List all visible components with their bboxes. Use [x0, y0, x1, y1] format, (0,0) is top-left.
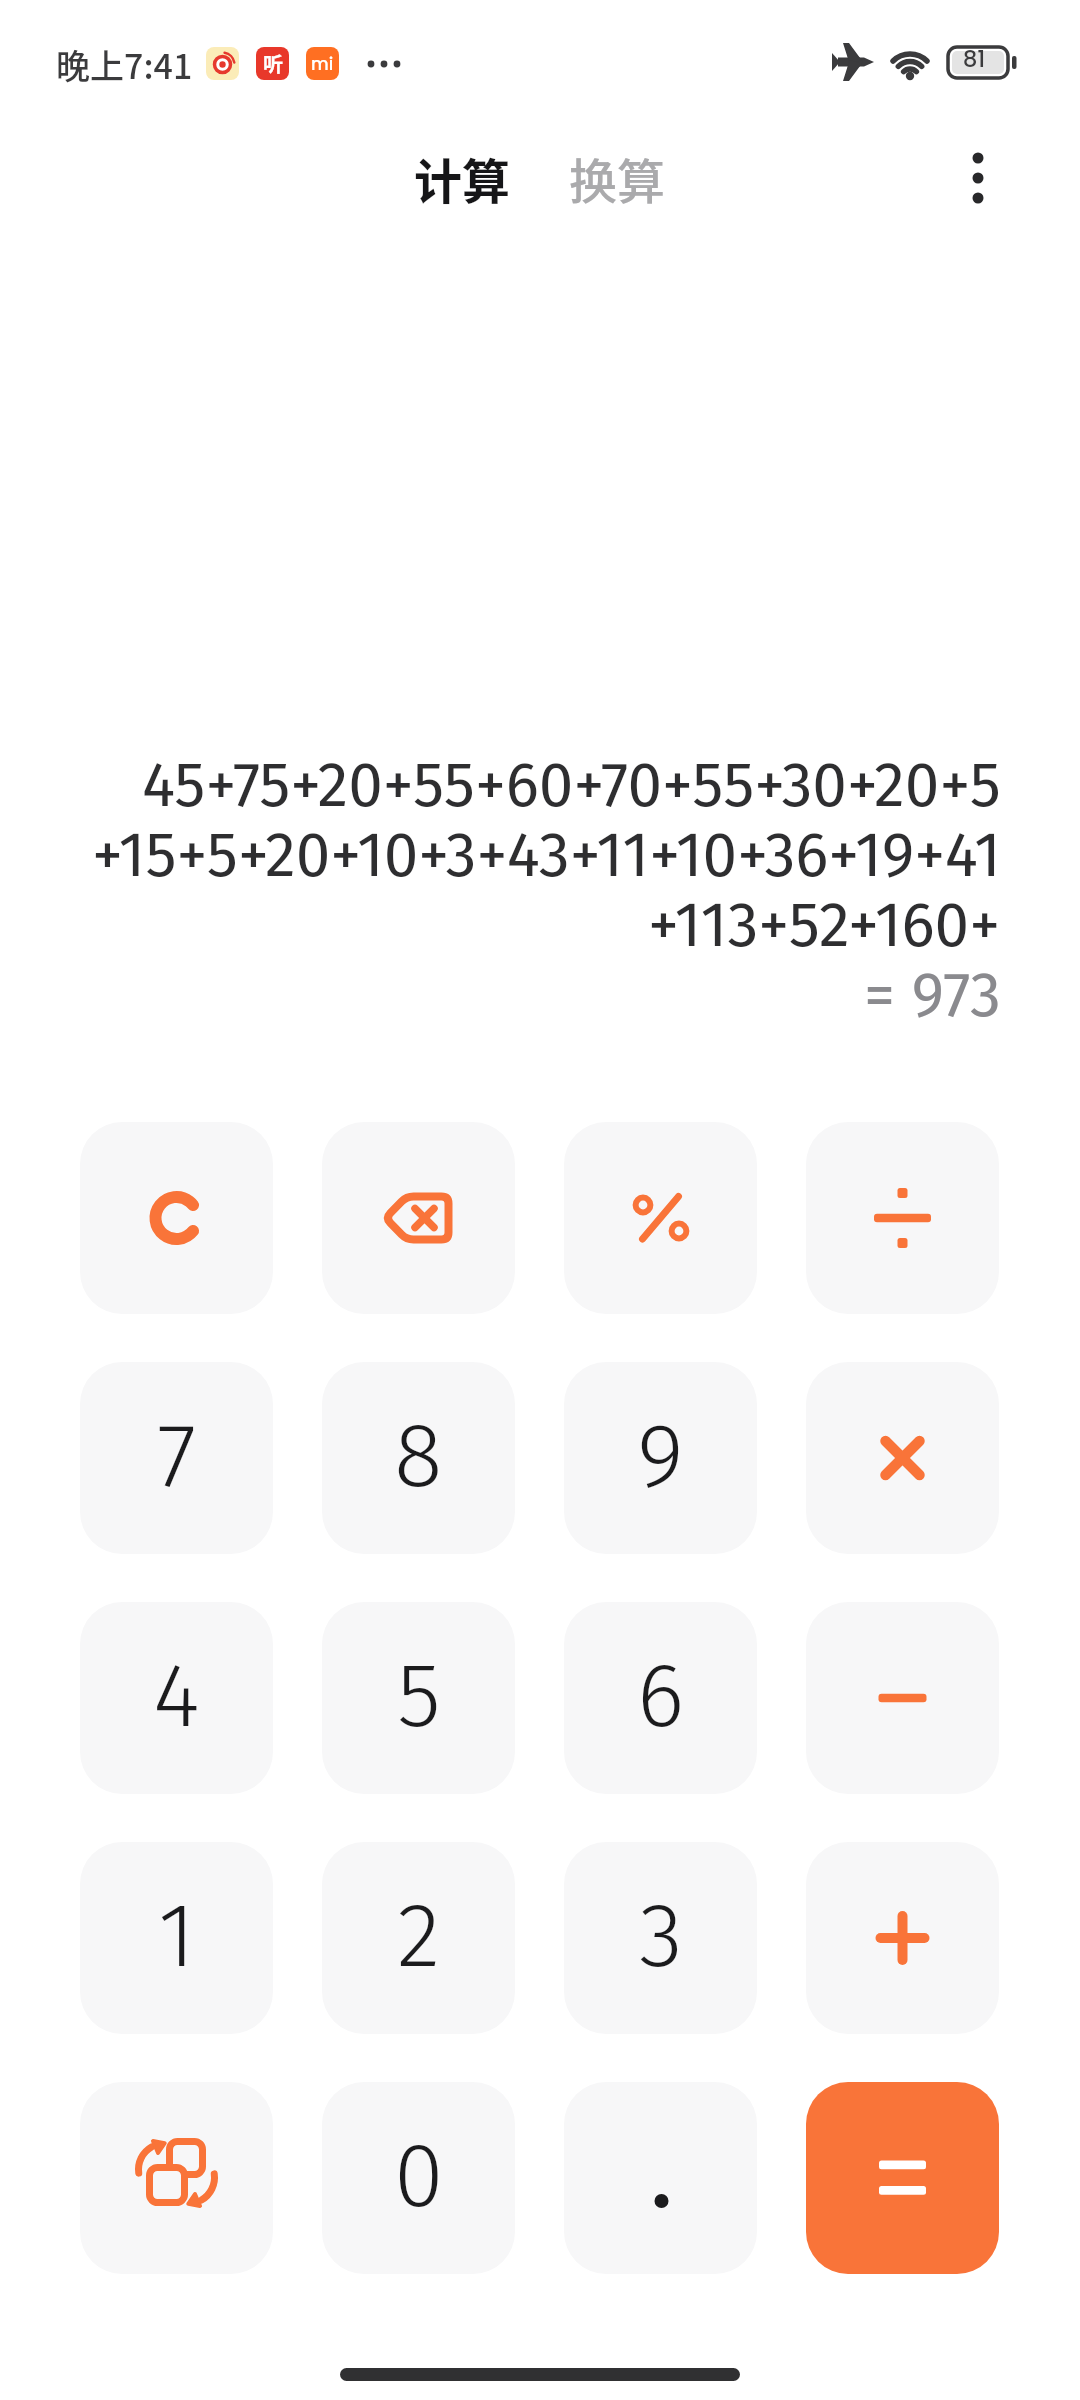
button[interactable] [322, 1122, 515, 1314]
button[interactable]: 换算 [569, 143, 666, 213]
staticText: mi [311, 52, 334, 76]
staticText: 听 [263, 49, 283, 78]
button[interactable]: 计算 [414, 143, 511, 213]
button[interactable]: 7 [80, 1362, 273, 1554]
staticText: 8 [394, 1402, 443, 1510]
staticText: 9 [637, 1402, 684, 1510]
staticText: +113+52+160+ [648, 888, 1001, 962]
button[interactable]: 6 [564, 1602, 757, 1794]
staticText: +15+5+20+10+3+43+11+10+36+19+41 [92, 818, 1001, 892]
staticText: 7 [157, 1402, 197, 1510]
button[interactable] [806, 1362, 999, 1554]
staticText: 4 [153, 1642, 200, 1750]
staticText: 2 [397, 1882, 441, 1990]
button[interactable] [80, 1122, 273, 1314]
staticText: 1 [158, 1882, 196, 1990]
staticText: 5 [397, 1642, 441, 1750]
button[interactable] [564, 1122, 757, 1314]
button[interactable] [564, 2082, 757, 2274]
button[interactable] [806, 1842, 999, 2034]
button[interactable]: 9 [564, 1362, 757, 1554]
staticText: 换算 [569, 143, 666, 213]
staticText: 3 [639, 1882, 683, 1990]
staticText: 6 [637, 1642, 685, 1750]
button[interactable] [80, 2082, 273, 2274]
button[interactable] [948, 148, 1008, 208]
staticText: 晚上7:41 [56, 40, 193, 89]
button[interactable]: 3 [564, 1842, 757, 2034]
staticText: = 973 [864, 958, 1001, 1032]
button[interactable] [806, 1602, 999, 1794]
button[interactable] [806, 2082, 999, 2274]
button[interactable] [806, 1122, 999, 1314]
staticText: 81 [948, 43, 1000, 75]
staticText: 0 [394, 2122, 444, 2230]
button[interactable]: 1 [80, 1842, 273, 2034]
button[interactable]: 5 [322, 1602, 515, 1794]
button[interactable]: 0 [322, 2082, 515, 2274]
button[interactable]: 2 [322, 1842, 515, 2034]
staticText: 计算 [414, 143, 511, 213]
button[interactable]: 4 [80, 1602, 273, 1794]
button[interactable]: 8 [322, 1362, 515, 1554]
staticText: 45+75+20+55+60+70+55+30+20+5 [142, 748, 1001, 822]
